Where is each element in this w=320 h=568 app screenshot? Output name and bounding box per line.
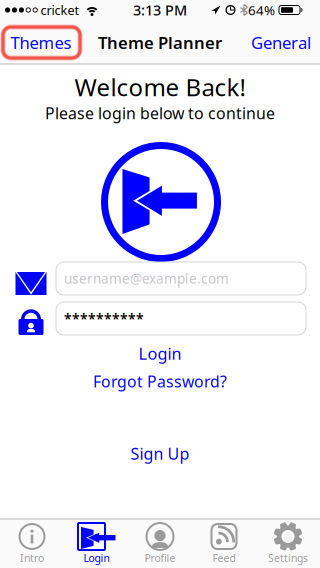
staticText: username@example.com: [64, 269, 229, 288]
staticText: **********: [64, 309, 144, 328]
staticText: Intro: [20, 551, 44, 565]
staticText: General: [251, 31, 311, 53]
staticText: 64%: [248, 1, 275, 19]
staticText: Theme Planner: [98, 31, 222, 53]
staticText: Settings: [268, 551, 308, 565]
button[interactable]: Feed: [192, 520, 256, 568]
staticText: Login: [83, 551, 109, 565]
button[interactable]: Forgot Password?: [85, 369, 235, 393]
button[interactable]: Sign Up: [115, 441, 205, 465]
button[interactable]: Profile: [128, 520, 192, 568]
button[interactable]: Settings: [256, 520, 320, 568]
staticText: Profile: [144, 551, 175, 565]
button[interactable]: Login: [64, 520, 128, 568]
staticText: cricket: [40, 2, 79, 18]
button[interactable]: Intro: [0, 520, 64, 568]
staticText: Login: [138, 343, 181, 364]
button[interactable]: General: [248, 27, 314, 57]
staticText: Sign Up: [130, 443, 189, 464]
staticText: 3:13 PM: [133, 0, 187, 19]
staticText: Feed: [212, 551, 235, 565]
staticText: Please login below to continue: [45, 102, 275, 124]
button[interactable]: Login: [120, 341, 200, 365]
staticText: Themes: [10, 31, 71, 53]
staticText: Welcome Back!: [74, 71, 245, 103]
staticText: Forgot Password?: [93, 371, 227, 392]
button[interactable]: Themes: [6, 27, 76, 57]
